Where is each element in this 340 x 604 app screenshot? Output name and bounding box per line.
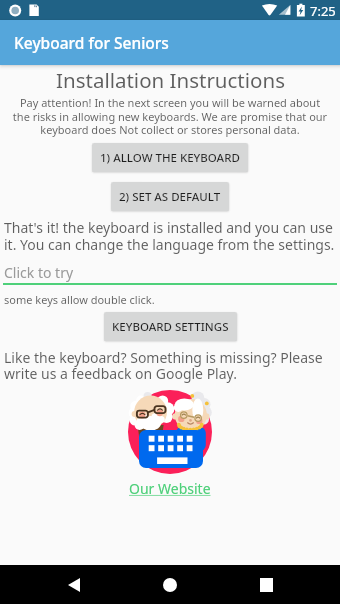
staticText: Our Website (129, 479, 211, 498)
staticText: Keyboard for Seniors (14, 32, 169, 53)
staticText: 2) SET AS DEFAULT (119, 189, 221, 205)
staticText: some keys allow double click. (4, 292, 155, 307)
staticText: Like the keyboard? Something is missing?… (4, 348, 338, 383)
button[interactable]: 2) SET AS DEFAULT (111, 182, 229, 211)
staticText: Pay attention! In the next screen you wi… (10, 95, 330, 137)
button[interactable]: Home (146, 565, 194, 604)
button[interactable]: Back (50, 565, 98, 604)
staticText: Installation Instructions (56, 66, 285, 94)
staticText: KEYBOARD SETTINGS (112, 319, 229, 335)
button[interactable]: Recent apps (242, 565, 290, 604)
staticText: Click to try (4, 263, 74, 282)
button[interactable]: KEYBOARD SETTINGS (104, 312, 237, 341)
staticText: 7:25 (310, 2, 336, 20)
staticText: 1) ALLOW THE KEYBOARD (100, 150, 240, 166)
staticText: That's it! the keyboard is installed and… (4, 218, 338, 254)
button[interactable]: 1) ALLOW THE KEYBOARD (92, 143, 248, 172)
button[interactable]: Our Website (129, 479, 211, 498)
